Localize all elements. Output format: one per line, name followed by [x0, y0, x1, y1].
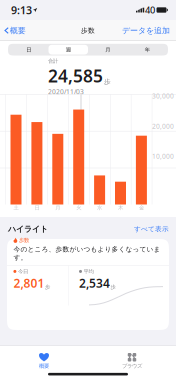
staticText: 今日	[18, 268, 28, 275]
staticText: ハイライト	[8, 224, 48, 234]
staticText: 20,000	[152, 122, 174, 130]
staticText: 2,801	[13, 275, 44, 291]
staticText: 歩	[45, 284, 50, 290]
staticText: 歩数	[81, 26, 95, 35]
staticText: 歩	[111, 284, 116, 290]
staticText: 木	[118, 204, 123, 211]
button[interactable]: 週	[48, 45, 88, 54]
staticText: 土	[13, 204, 18, 211]
staticText: 日	[26, 46, 31, 53]
staticText: 月	[55, 204, 60, 211]
staticText: 月	[105, 46, 110, 53]
button[interactable]: 概要	[0, 20, 30, 41]
staticText: 9:13	[11, 3, 32, 17]
staticText: 2,534	[79, 275, 110, 291]
staticText: 2020/11/03	[48, 87, 84, 96]
staticText: 合計	[48, 58, 58, 64]
staticText: 水	[97, 204, 102, 211]
button[interactable]: 月	[88, 45, 127, 54]
button[interactable]: 概要	[0, 349, 88, 373]
staticText: ブラウズ	[122, 363, 142, 369]
button[interactable]: 日	[9, 45, 48, 54]
staticText: 歩数	[19, 237, 29, 244]
staticText: 概要	[39, 363, 49, 369]
staticText: すべて表示	[134, 225, 169, 233]
staticText: 40	[145, 4, 155, 16]
staticText: 30,000	[152, 91, 174, 100]
staticText: 今のところ、歩数がいつもより多くなっています。	[13, 245, 160, 262]
staticText: 日	[34, 204, 39, 211]
button[interactable]: ブラウズ	[88, 349, 176, 373]
staticText: 平均	[84, 268, 94, 275]
button[interactable]: 年	[127, 45, 167, 54]
staticText: 年	[145, 46, 150, 53]
button[interactable]: データを追加	[118, 20, 176, 41]
button[interactable]: すべて表示	[128, 221, 169, 237]
staticText: 概要	[10, 26, 26, 35]
staticText: 火	[76, 204, 81, 211]
staticText: 24,585	[48, 64, 103, 87]
staticText: データを追加	[122, 26, 170, 35]
staticText: 歩	[104, 78, 111, 86]
staticText: 金	[139, 204, 144, 211]
staticText: 10,000	[152, 152, 174, 161]
staticText: 週	[66, 46, 71, 53]
